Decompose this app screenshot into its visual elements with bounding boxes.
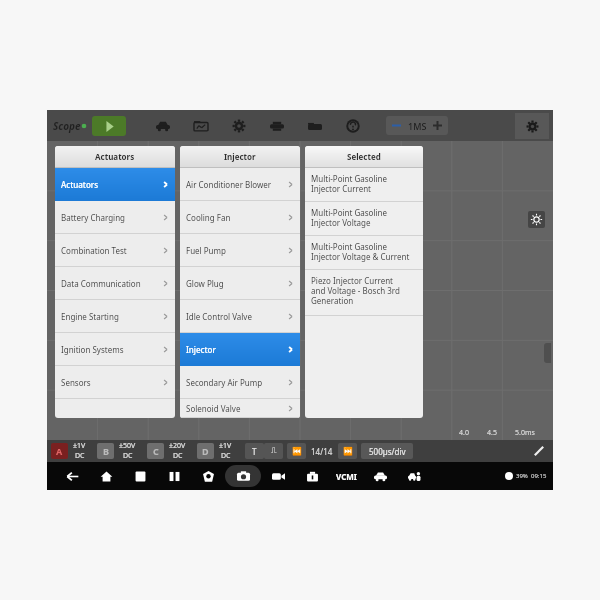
button[interactable]: ⏭ xyxy=(338,443,357,459)
button[interactable]: Ignition Systems xyxy=(55,333,175,366)
staticText: DC xyxy=(221,451,231,461)
staticText: Cooling Fan xyxy=(186,212,287,223)
button[interactable]: Apps xyxy=(295,463,329,489)
staticText: 09:15 xyxy=(531,472,547,480)
button[interactable]: Cooling Fan xyxy=(180,201,300,234)
staticText: D xyxy=(202,445,209,457)
button[interactable]: Print xyxy=(258,113,296,139)
button[interactable]: Idle Control Valve xyxy=(180,300,300,333)
button[interactable]: Browser xyxy=(191,463,225,489)
staticText: Fuel Pump xyxy=(186,245,287,256)
button[interactable]: 500µs/div xyxy=(361,443,413,459)
button[interactable]: Open xyxy=(296,113,334,139)
button[interactable]: Home xyxy=(89,463,123,489)
button[interactable]: VCMI xyxy=(329,463,363,489)
button[interactable]: Help xyxy=(334,113,372,139)
button[interactable]: Measure xyxy=(529,441,549,461)
staticText: ⎍ xyxy=(271,447,277,455)
staticText: ±20V xyxy=(169,441,186,451)
staticText: B xyxy=(103,445,109,457)
staticText: Data Communication xyxy=(61,278,162,289)
button[interactable]: Vehicle xyxy=(363,463,397,489)
staticText: Selected xyxy=(347,151,381,162)
staticText: ⏮ xyxy=(292,447,302,456)
staticText: ±1V xyxy=(73,441,86,451)
button[interactable]: Tool settings xyxy=(515,113,549,139)
staticText: 4.5 xyxy=(487,428,497,438)
button[interactable]: Secondary Air Pump xyxy=(180,366,300,399)
staticText: Engine Starting xyxy=(61,311,162,322)
button[interactable]: Multi-Point Gasoline Injector Voltage & … xyxy=(305,236,423,270)
button[interactable]: Diagnostics xyxy=(397,463,431,489)
staticText: Idle Control Valve xyxy=(186,311,287,322)
staticText: 5.0ms xyxy=(515,428,535,438)
staticText: Glow Plug xyxy=(186,278,287,289)
staticText: C xyxy=(153,445,159,457)
staticText: T xyxy=(252,446,257,457)
staticText: Injector xyxy=(186,344,287,355)
staticText: A xyxy=(56,445,63,457)
button[interactable]: ⎍ xyxy=(264,443,283,459)
staticText: Multi-Point Gasoline Injector Voltage xyxy=(311,207,388,228)
button[interactable]: Combination Test xyxy=(55,234,175,267)
staticText: 39% xyxy=(516,472,528,480)
staticText: Actuators xyxy=(95,151,135,162)
staticText: Battery Charging xyxy=(61,212,162,223)
button[interactable]: Recents xyxy=(123,463,157,489)
button[interactable]: Injector xyxy=(180,333,300,366)
staticText: Ignition Systems xyxy=(61,344,162,355)
button[interactable]: Recordings xyxy=(182,113,220,139)
staticText: Sensors xyxy=(61,377,162,388)
staticText: ±50V xyxy=(119,441,136,451)
button[interactable]: ⏮ xyxy=(287,443,306,459)
staticText: Solenoid Valve xyxy=(186,403,287,414)
button[interactable]: Air Conditioner Blower xyxy=(180,168,300,201)
button[interactable]: Sensors xyxy=(55,366,175,399)
staticText: ⏭ xyxy=(343,447,353,456)
staticText: Actuators xyxy=(61,179,162,190)
button[interactable]: 1MS xyxy=(386,116,448,135)
button[interactable]: D xyxy=(197,443,214,459)
button[interactable]: Split screen xyxy=(157,463,191,489)
staticText: DC xyxy=(173,451,183,461)
staticText: Air Conditioner Blower xyxy=(186,179,287,190)
staticText: Multi-Point Gasoline Injector Voltage & … xyxy=(311,241,410,262)
button[interactable]: Multi-Point Gasoline Injector Voltage xyxy=(305,202,423,236)
staticText: Piezo Injector Current and Voltage - Bos… xyxy=(311,275,400,306)
button[interactable]: Glow Plug xyxy=(180,267,300,300)
staticText: Injector xyxy=(224,151,256,162)
button[interactable]: Screenshot xyxy=(225,465,261,487)
staticText: ±1V xyxy=(219,441,232,451)
staticText: DC xyxy=(123,451,133,461)
button[interactable]: Brightness xyxy=(528,211,545,228)
button[interactable]: Piezo Injector Current and Voltage - Bos… xyxy=(305,270,423,316)
button[interactable]: C xyxy=(147,443,164,459)
staticText: 1MS xyxy=(408,120,427,132)
staticText: Secondary Air Pump xyxy=(186,377,287,388)
button[interactable]: A xyxy=(51,443,68,459)
staticText: 4.0 xyxy=(459,428,469,438)
button[interactable]: B xyxy=(97,443,114,459)
button[interactable]: Vehicle xyxy=(144,113,182,139)
staticText: 500µs/div xyxy=(369,446,406,457)
staticText: Scope xyxy=(53,119,81,133)
button[interactable]: Record xyxy=(261,463,295,489)
button[interactable]: Play xyxy=(92,116,126,136)
button[interactable]: Back xyxy=(55,463,89,489)
button[interactable]: Solenoid Valve xyxy=(180,399,300,418)
button[interactable]: Battery Charging xyxy=(55,201,175,234)
button[interactable]: Fuel Pump xyxy=(180,234,300,267)
button[interactable]: Multi-Point Gasoline Injector Current xyxy=(305,168,423,202)
button[interactable]: Settings xyxy=(220,113,258,139)
staticText: VCMI xyxy=(336,471,357,482)
button[interactable]: T xyxy=(245,443,264,459)
button[interactable]: Engine Starting xyxy=(55,300,175,333)
button[interactable]: Data Communication xyxy=(55,267,175,300)
staticText: 14/14 xyxy=(311,446,333,457)
staticText: DC xyxy=(75,451,85,461)
staticText: Combination Test xyxy=(61,245,162,256)
button[interactable]: Actuators xyxy=(55,168,175,201)
staticText: Multi-Point Gasoline Injector Current xyxy=(311,173,388,194)
